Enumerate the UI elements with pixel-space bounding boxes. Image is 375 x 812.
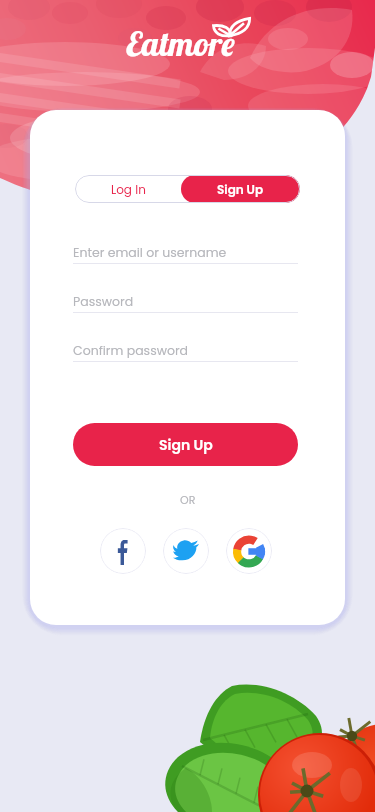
staticText: Sign Up — [217, 181, 264, 198]
button[interactable]: Sign up with Facebook — [100, 528, 146, 574]
staticText: Log In — [111, 181, 146, 198]
staticText: Sign Up — [159, 435, 213, 455]
button[interactable]: Enter email or username — [73, 244, 298, 264]
button[interactable]: Sign Up — [181, 175, 300, 203]
staticText: Eatmore — [126, 22, 236, 65]
staticText: OR — [180, 492, 196, 507]
button[interactable]: Password — [73, 293, 298, 313]
button[interactable]: Confirm password — [73, 342, 298, 362]
button[interactable]: Sign Up — [73, 423, 298, 466]
button[interactable]: Log In — [75, 175, 181, 203]
staticText: Enter email or username — [73, 244, 227, 261]
button[interactable]: Sign up with Twitter — [163, 528, 209, 574]
button[interactable]: Sign up with Google — [226, 528, 272, 574]
staticText: Confirm password — [73, 342, 189, 359]
staticText: Password — [73, 293, 134, 310]
